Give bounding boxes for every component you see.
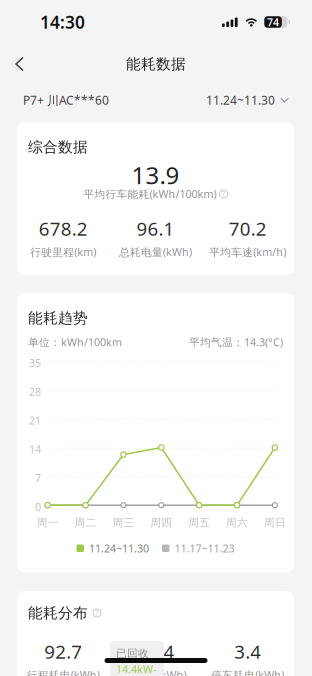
staticText: ? bbox=[95, 608, 98, 617]
staticText: 14 bbox=[29, 442, 41, 456]
staticText: 行程耗电(kWh) bbox=[27, 668, 100, 676]
button[interactable]: Back bbox=[0, 46, 38, 82]
staticText: 13.9 bbox=[131, 159, 179, 191]
staticText: P7+ 川AC***60 bbox=[23, 92, 109, 108]
staticText: 周五 bbox=[188, 516, 210, 529]
staticText: 周二 bbox=[75, 516, 97, 529]
staticText: 平均气温：14.3(°C) bbox=[189, 335, 283, 349]
staticText: 已回收 bbox=[116, 647, 149, 660]
staticText: 停车耗电(kWh) bbox=[211, 668, 284, 676]
staticText: 92.7 bbox=[44, 639, 82, 664]
staticText: 总耗电量(kWh) bbox=[119, 245, 192, 259]
staticText: 14.4kWh bbox=[116, 662, 156, 676]
staticText: 能耗数据 bbox=[126, 55, 186, 73]
staticText: 35 bbox=[29, 356, 41, 370]
staticText: 平均车速(km/h) bbox=[209, 245, 286, 259]
staticText: 11.24~11.30 bbox=[89, 541, 149, 555]
staticText: 0 bbox=[35, 500, 41, 514]
staticText: 3.4 bbox=[234, 639, 261, 664]
staticText: 7 bbox=[35, 471, 41, 485]
staticText: 综合数据 bbox=[28, 138, 88, 156]
staticText: 678.2 bbox=[39, 216, 88, 241]
staticText: 周六 bbox=[226, 516, 248, 529]
staticText: ? bbox=[222, 189, 225, 198]
staticText: 行驶里程(km) bbox=[30, 245, 96, 259]
staticText: 96.1 bbox=[136, 216, 174, 241]
staticText: 74 bbox=[267, 15, 279, 29]
staticText: 周四 bbox=[150, 516, 172, 529]
staticText: 周一 bbox=[37, 516, 59, 529]
staticText: 28 bbox=[29, 384, 41, 399]
staticText: 单位：kWh/100km bbox=[28, 335, 122, 349]
staticText: 11.24~11.30 bbox=[206, 92, 275, 108]
staticText: 周三 bbox=[112, 516, 134, 529]
staticText: 平均行车能耗(kWh/100km) bbox=[83, 187, 216, 201]
staticText: 11.17~11.23 bbox=[174, 541, 234, 555]
staticText: 14.4 bbox=[136, 639, 174, 664]
staticText: 周日 bbox=[264, 516, 286, 529]
staticText: 能耗趋势 bbox=[28, 309, 88, 327]
staticText: 70.2 bbox=[229, 216, 267, 241]
staticText: 能耗分布 bbox=[28, 604, 88, 622]
staticText: 21 bbox=[29, 413, 41, 427]
staticText: 14:30 bbox=[40, 10, 85, 33]
staticText: 已回收(kWh) bbox=[124, 668, 186, 676]
button[interactable]: 11.24~11.30 bbox=[206, 92, 289, 108]
